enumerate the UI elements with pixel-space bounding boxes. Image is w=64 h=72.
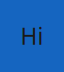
staticText: Hi <box>20 21 43 51</box>
